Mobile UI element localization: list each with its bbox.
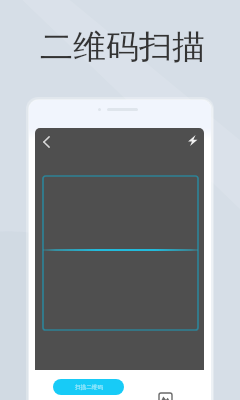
button[interactable]: Choose image from gallery <box>157 391 173 400</box>
button[interactable]: Flash <box>182 130 202 150</box>
button[interactable]: 扫描二维码 <box>53 379 124 395</box>
button[interactable]: Back <box>36 132 56 152</box>
staticText: 二维码扫描 <box>40 26 205 68</box>
staticText: 扫描二维码 <box>75 384 103 391</box>
